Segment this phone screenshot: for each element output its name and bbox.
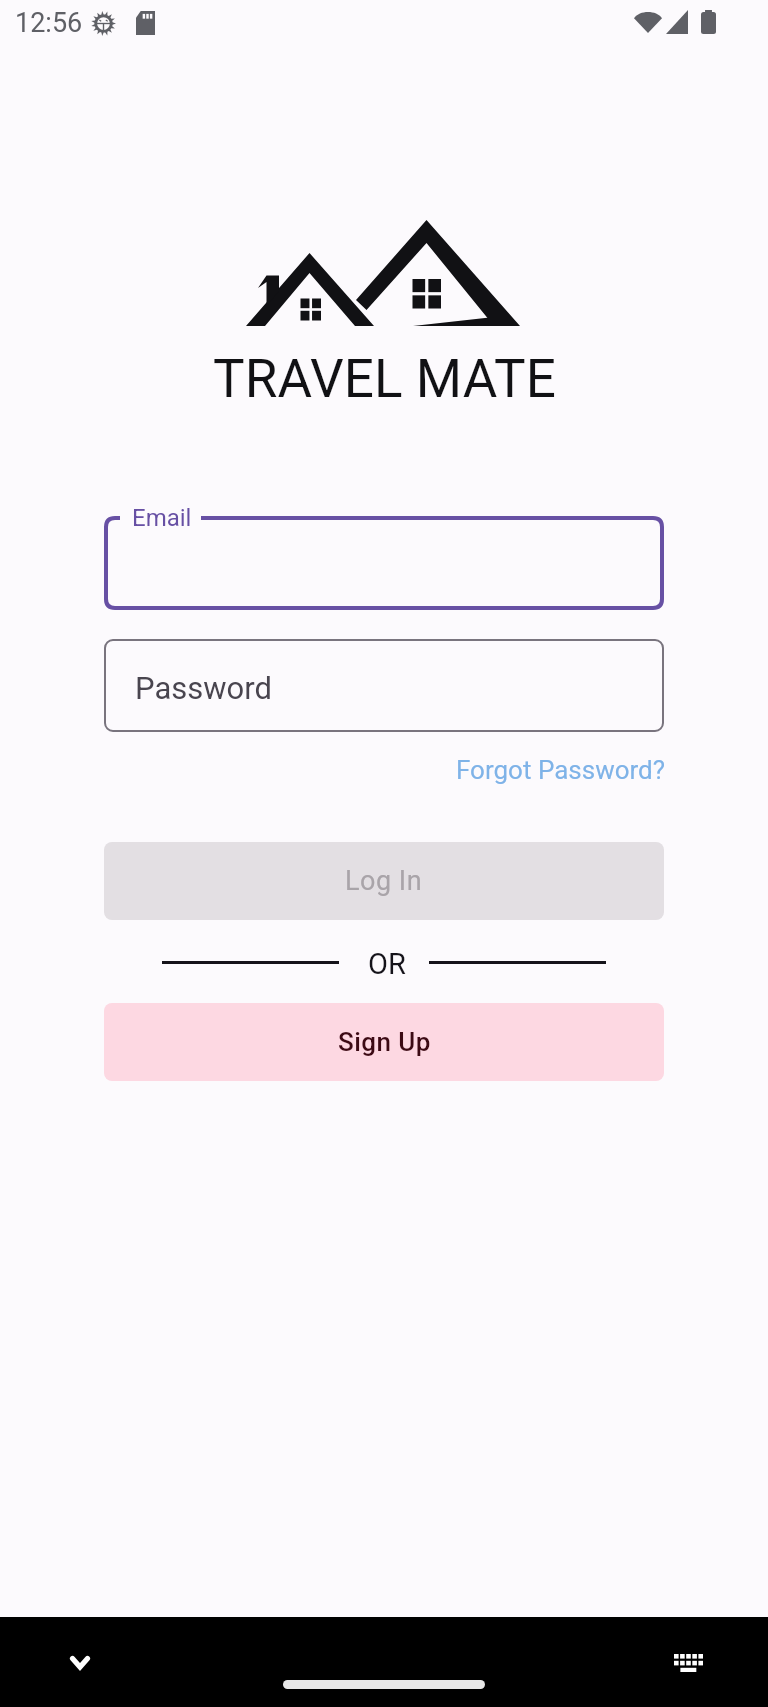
staticText: Forgot Password? [456, 755, 666, 785]
staticText: OR [368, 947, 406, 979]
staticText: Log In [345, 865, 423, 897]
staticText: Password [135, 670, 272, 706]
button[interactable]: Switch keyboard [659, 1641, 719, 1701]
staticText: TRAVEL MATE [213, 348, 556, 410]
button[interactable]: Forgot Password? [456, 755, 666, 785]
staticText: Email [132, 504, 192, 532]
button[interactable]: Password [104, 639, 664, 732]
staticText: Sign Up [338, 1027, 431, 1057]
button[interactable]: Email [104, 508, 664, 610]
staticText: 12:56 [15, 7, 83, 39]
button[interactable]: Hide keyboard [50, 1633, 110, 1693]
button[interactable]: Log In [104, 842, 664, 920]
button[interactable]: Sign Up [104, 1003, 664, 1081]
